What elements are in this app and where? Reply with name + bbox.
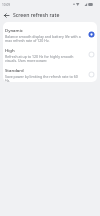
staticText: Standard: [5, 67, 24, 73]
button[interactable]: Dynamic: [3, 22, 97, 42]
staticText: Balance smooth display and battery life …: [5, 34, 81, 42]
staticText: Save power by limiting the refresh rate …: [5, 74, 81, 82]
button[interactable]: High: [3, 42, 97, 62]
button[interactable]: Back: [0, 9, 13, 22]
staticText: High: [5, 47, 15, 53]
staticText: Dynamic: [5, 27, 23, 33]
staticText: 10:09: [2, 3, 11, 7]
staticText: Refresh at up to 120 Hz for highly smoot…: [5, 54, 81, 62]
staticText: Screen refresh rate: [13, 12, 60, 19]
button[interactable]: Standard: [3, 62, 97, 82]
